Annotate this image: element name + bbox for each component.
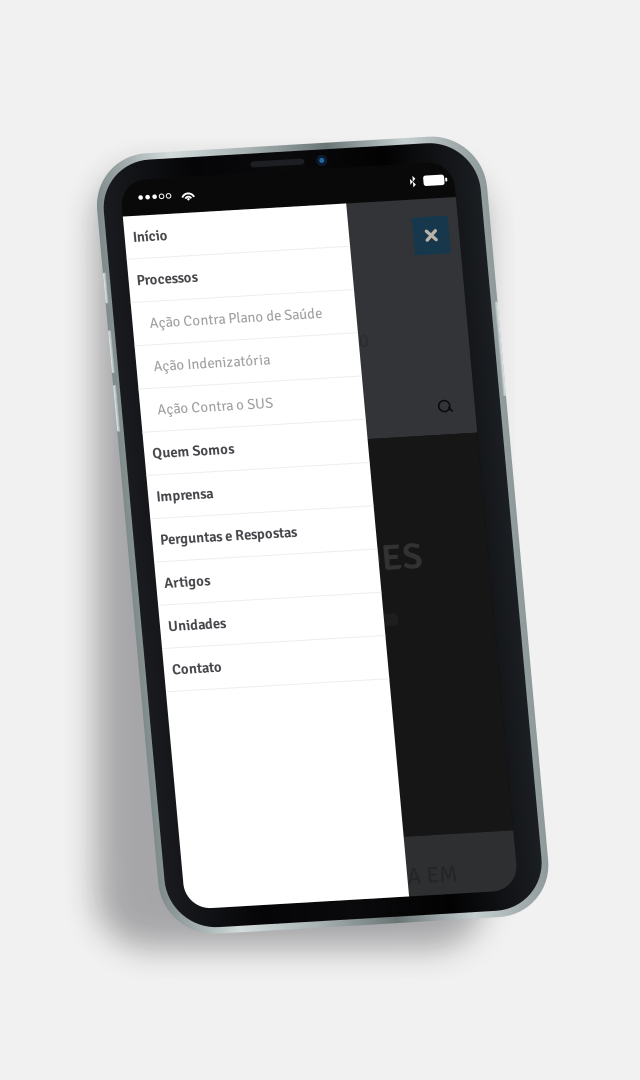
staticText: Ação Indenizatória [42, 205, 159, 223]
staticText: Unidades [33, 466, 91, 484]
button[interactable]: Unidades [25, 453, 249, 497]
staticText: Ação Contra o SUS [42, 248, 158, 266]
staticText: AGENDE SUA CONSULTA [37, 229, 193, 248]
button[interactable]: Processos [25, 105, 249, 149]
staticText: Quem Somos [33, 292, 115, 310]
button[interactable]: Perguntas e Respostas [25, 366, 249, 410]
button[interactable]: Contato [25, 497, 249, 540]
staticText: Perguntas e Respostas [33, 379, 170, 397]
staticText: Imprensa [33, 335, 90, 353]
staticText: Contato [33, 509, 83, 527]
staticText: Seg. a Sex. das 8h00 às 19h00 [25, 189, 259, 212]
button[interactable]: Quem Somos [25, 279, 249, 323]
button[interactable]: Ação Indenizatória [25, 192, 249, 236]
button[interactable]: Ação Contra Plano de Saúde [25, 149, 249, 192]
staticText: NDES [203, 397, 293, 441]
staticText: Ação Contra Plano de Saúde [42, 161, 215, 179]
button[interactable]: AGENDE SUA CONSULTA [25, 227, 205, 250]
button[interactable]: Imprensa [25, 323, 249, 366]
button[interactable]: Artigos [25, 410, 249, 453]
button[interactable]: Ação Contra o SUS [25, 236, 249, 279]
